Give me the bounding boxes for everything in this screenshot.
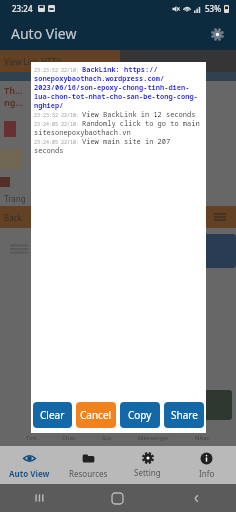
staticText: Chat [62, 434, 76, 442]
staticText: Share [171, 408, 198, 422]
button[interactable]: Clear [33, 402, 72, 428]
staticText: Auto View [11, 24, 77, 43]
staticText: Setting [134, 467, 161, 478]
staticText: Copy [128, 408, 152, 422]
button[interactable]: Settings [206, 23, 228, 45]
staticText: Back [4, 212, 22, 223]
button[interactable]: Info [177, 446, 236, 484]
staticText: 23:23:52 22/10: BackLink: https://sonepo… [34, 65, 203, 155]
staticText: View Link HTTP [4, 56, 61, 67]
button[interactable]: Setting [118, 446, 177, 484]
staticText: Auto View [9, 468, 50, 479]
button[interactable]: Resources [59, 446, 118, 484]
staticText: Trang [0, 193, 26, 204]
staticText: Nhạc [195, 434, 210, 442]
staticText: Clear [40, 408, 65, 422]
button[interactable]: Cancel [76, 402, 116, 428]
button[interactable]: Share [164, 402, 204, 428]
staticText: Tim [26, 434, 37, 442]
button[interactable]: Copy [120, 402, 160, 428]
button[interactable]: Auto View [0, 446, 59, 484]
staticText: Gọi [102, 434, 112, 442]
staticText: 23:24 [12, 3, 33, 14]
staticText: Cancel [80, 408, 112, 422]
staticText: Resources [69, 468, 108, 479]
staticText: Messenger [138, 434, 170, 442]
staticText: Info [199, 468, 215, 479]
staticText: ng... [4, 96, 24, 108]
staticText: Th... [4, 84, 23, 96]
staticText: 53% [205, 3, 221, 14]
